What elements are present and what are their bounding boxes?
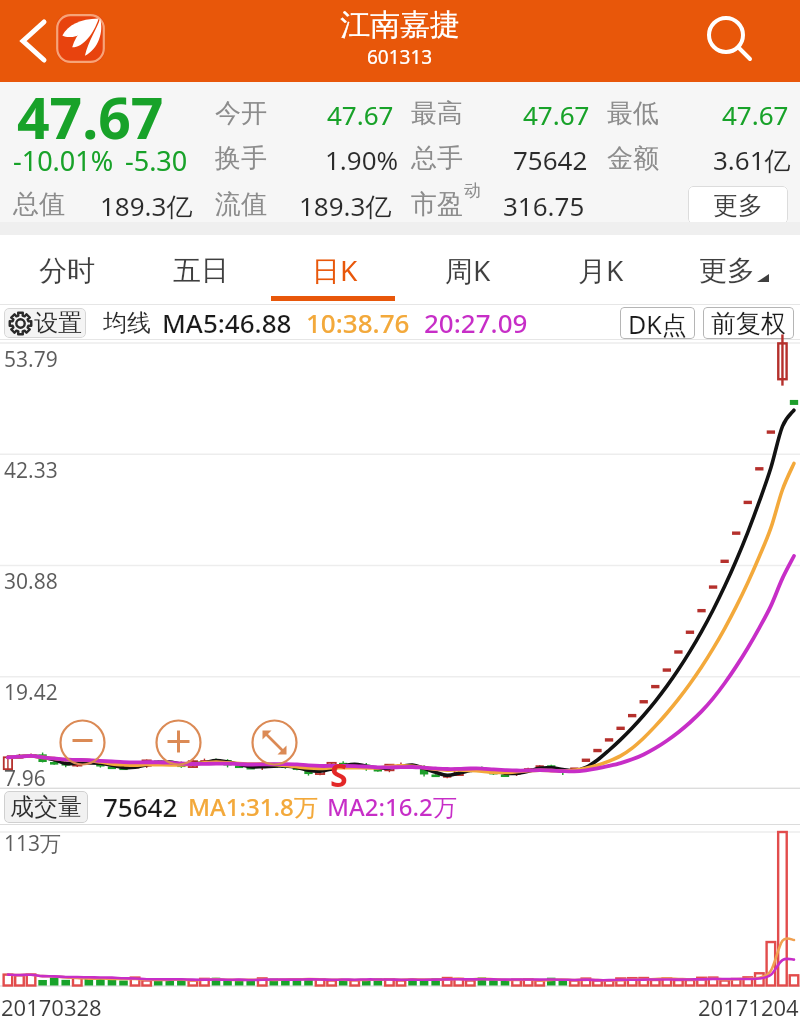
staticText: 42.33 xyxy=(4,456,58,485)
staticText: 分时 xyxy=(39,253,95,288)
button[interactable]: 月K xyxy=(534,235,667,305)
staticText: S xyxy=(330,753,348,797)
button[interactable]: 日K xyxy=(268,235,401,305)
staticText: 日K xyxy=(312,251,358,289)
staticText: 20:27.09 xyxy=(424,305,528,340)
staticText: 前复权 xyxy=(711,308,786,339)
staticText: 189.3亿 xyxy=(100,188,193,224)
staticText: DK点 xyxy=(628,307,687,339)
staticText: 动 xyxy=(464,180,481,201)
staticText: -10.01% xyxy=(13,142,114,179)
staticText: 最低 xyxy=(607,97,659,130)
staticText: 均线 xyxy=(103,308,151,338)
button[interactable]: 周K xyxy=(401,235,534,305)
staticText: 316.75 xyxy=(503,188,585,223)
staticText: 周K xyxy=(445,251,491,289)
button[interactable]: 分时 xyxy=(0,235,134,305)
staticText: 601313 xyxy=(367,44,433,70)
staticText: 市盈 xyxy=(411,188,463,221)
staticText: MA2:16.2万 xyxy=(327,790,457,823)
staticText: 75642 xyxy=(103,789,178,824)
button[interactable]: 五日 xyxy=(134,235,268,305)
staticText: MA1:31.8万 xyxy=(188,790,318,823)
staticText: 47.67 xyxy=(523,97,590,132)
button[interactable]: Search xyxy=(704,10,762,68)
staticText: 7.96 xyxy=(4,764,46,793)
staticText: 20170328 xyxy=(1,992,102,1019)
staticText: 75642 xyxy=(513,142,588,177)
staticText: 30.88 xyxy=(4,567,58,596)
staticText: -5.30 xyxy=(125,142,188,179)
staticText: 10:38.76 xyxy=(306,305,410,340)
staticText: 3.61亿 xyxy=(713,142,791,178)
staticText: MA5:46.88 xyxy=(162,305,292,340)
staticText: 流值 xyxy=(215,188,267,221)
button[interactable]: Back xyxy=(2,12,60,70)
staticText: 最高 xyxy=(411,97,463,130)
staticText: 设置 xyxy=(34,308,82,338)
staticText: 53.79 xyxy=(4,345,58,374)
button[interactable]: 设置 xyxy=(8,308,82,338)
staticText: 更多 xyxy=(713,190,763,221)
staticText: 1.90% xyxy=(325,142,399,177)
button[interactable]: 前复权 xyxy=(711,307,786,339)
button[interactable]: 更多 xyxy=(688,186,788,224)
staticText: 江南嘉捷 xyxy=(340,6,460,44)
staticText: 成交量 xyxy=(10,792,82,822)
staticText: 113万 xyxy=(4,829,62,858)
staticText: 五日 xyxy=(173,253,229,288)
staticText: 月K xyxy=(578,251,624,289)
staticText: 47.67 xyxy=(17,78,164,156)
staticText: 47.67 xyxy=(722,97,789,132)
staticText: 换手 xyxy=(215,142,267,175)
staticText: 总手 xyxy=(411,142,463,175)
staticText: 20171204 xyxy=(698,992,799,1019)
staticText: 19.42 xyxy=(4,678,58,707)
staticText: 47.67 xyxy=(327,97,394,132)
staticText: 金额 xyxy=(607,142,659,175)
button[interactable]: 成交量 xyxy=(10,791,82,823)
button[interactable]: Eastmoney logo xyxy=(56,14,105,63)
staticText: 总值 xyxy=(13,188,65,221)
button[interactable]: 更多 xyxy=(667,235,800,305)
staticText: 今开 xyxy=(215,97,267,130)
button[interactable]: DK点 xyxy=(628,307,687,339)
staticText: 189.3亿 xyxy=(299,188,392,224)
staticText: 更多 xyxy=(699,253,755,288)
